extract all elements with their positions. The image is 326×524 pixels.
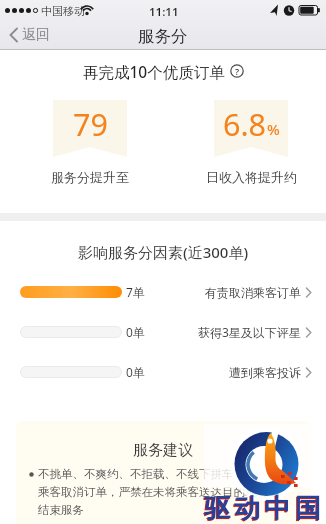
staticText: 0单 bbox=[126, 324, 145, 340]
staticText: 11:11 bbox=[149, 4, 179, 20]
staticText: 79 bbox=[73, 103, 108, 145]
staticText: 驱动中国 bbox=[203, 493, 325, 524]
staticText: 再完成10个优质订单 bbox=[83, 61, 225, 81]
staticText: 获得3星及以下评星 bbox=[198, 324, 301, 340]
button[interactable]: 0单 bbox=[20, 364, 312, 380]
staticText: 7单 bbox=[126, 284, 145, 300]
staticText: 服务建议 bbox=[133, 441, 193, 460]
staticText: 服务分提升至 bbox=[51, 169, 129, 185]
staticText: 日收入将提升约 bbox=[206, 169, 297, 185]
staticText: 驱动中国 bbox=[204, 492, 326, 524]
staticText: 遭到乘客投诉 bbox=[229, 365, 301, 380]
staticText: 6.8 bbox=[223, 103, 267, 145]
staticText: 0单 bbox=[126, 364, 145, 380]
staticText: % bbox=[267, 119, 280, 139]
staticText: 有责取消乘客订单 bbox=[205, 285, 301, 300]
button[interactable]: 0单 bbox=[20, 324, 312, 340]
staticText: 不挑单、不爽约、不拒载、不线下拼车、不让乘客取消订单，严禁在未将乘客送达目的地时… bbox=[38, 467, 278, 517]
staticText: 中国移动 bbox=[41, 4, 85, 18]
staticText: 影响服务分因素(近300单) bbox=[78, 242, 249, 262]
staticText: 返回 bbox=[22, 26, 50, 44]
button[interactable]: 返回 bbox=[8, 24, 50, 46]
staticText: ? bbox=[235, 65, 240, 77]
staticText: 服务分 bbox=[138, 26, 188, 47]
button[interactable]: 7单 bbox=[20, 284, 312, 300]
button[interactable]: 再完成10个优质订单 bbox=[0, 61, 326, 81]
